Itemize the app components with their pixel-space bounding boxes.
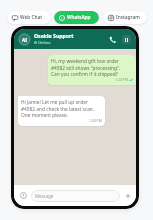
button[interactable]: Instagram [103, 11, 147, 24]
button[interactable]: Call [106, 33, 119, 46]
staticText: 1:24 PM [115, 77, 128, 82]
staticText: Online [38, 40, 51, 45]
staticText: WhatsApp [67, 14, 91, 21]
staticText: Hi Jamie! Let me pull up order #4582 and… [21, 99, 95, 118]
staticText: Osakle Support [34, 32, 74, 39]
button[interactable]: Emoji [19, 191, 28, 200]
button[interactable]: Message [31, 190, 120, 202]
button[interactable]: Web Chat [7, 11, 51, 24]
staticText: Hi, my weekend gift box order #4582 stil… [51, 58, 121, 77]
button[interactable]: Attach [123, 191, 132, 200]
staticText: Web Chat [20, 14, 43, 21]
staticText: 1:24 PM [89, 118, 102, 123]
button[interactable]: More options [120, 33, 133, 46]
staticText: Message [35, 193, 54, 199]
button[interactable]: WhatsApp [54, 11, 99, 24]
staticText: AI [22, 37, 27, 43]
staticText: Instagram [116, 14, 140, 21]
